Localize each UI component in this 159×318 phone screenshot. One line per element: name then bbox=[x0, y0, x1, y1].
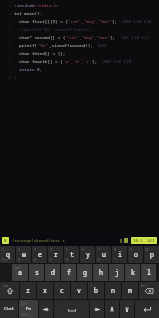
button[interactable]: Tab bbox=[12, 264, 28, 281]
staticText: / bbox=[107, 293, 110, 298]
staticText: = bbox=[95, 265, 98, 270]
staticText: 7 bbox=[98, 247, 101, 252]
staticText: v bbox=[77, 286, 81, 295]
staticText: j bbox=[115, 268, 119, 277]
button[interactable]: > bbox=[71, 282, 87, 299]
button[interactable]: = bbox=[93, 264, 108, 281]
button[interactable]: ? bbox=[88, 282, 104, 299]
button[interactable]: 5 bbox=[64, 246, 79, 263]
button[interactable]: < bbox=[54, 282, 70, 299]
staticText: 6 bbox=[9, 43, 12, 48]
button[interactable]: x bbox=[37, 282, 53, 299]
staticText: & bbox=[98, 257, 101, 262]
staticText: 4 bbox=[50, 247, 53, 252]
staticText: <stdio.h> bbox=[36, 2, 60, 8]
button[interactable]: Alt bbox=[19, 300, 38, 318]
staticText: ^ bbox=[82, 257, 85, 262]
button[interactable]: 10:1 All bbox=[133, 238, 155, 243]
staticText: s bbox=[35, 268, 39, 277]
button[interactable]: | bbox=[20, 282, 36, 299]
button[interactable]: 0 bbox=[144, 246, 159, 263]
button[interactable]: Left bbox=[39, 300, 53, 318]
button[interactable]: 9 bbox=[128, 246, 143, 263]
staticText: "cat","dog","bat" bbox=[66, 34, 110, 40]
staticText: Del bbox=[141, 283, 148, 288]
staticText: + bbox=[95, 275, 98, 280]
button[interactable]: Ctrl bbox=[0, 300, 18, 318]
staticText: 040 bbox=[98, 42, 106, 48]
staticText: d bbox=[51, 268, 55, 277]
staticText: l bbox=[147, 268, 151, 277]
staticText: /storage/shared/test.c bbox=[12, 238, 65, 243]
staticText: _ bbox=[79, 275, 82, 280]
staticText: w bbox=[22, 250, 26, 259]
staticText: Tab bbox=[14, 265, 21, 270]
button[interactable]: 3 bbox=[32, 246, 47, 263]
staticText: a bbox=[18, 268, 22, 277]
staticText: 2 bbox=[18, 247, 21, 252]
staticText: 8 bbox=[114, 247, 117, 252]
staticText: 3 bbox=[34, 247, 37, 252]
staticText: > bbox=[73, 283, 76, 288]
staticText: 1 bbox=[9, 3, 12, 8]
staticText: Fn bbox=[26, 306, 32, 312]
staticText: 0 bbox=[146, 247, 149, 252]
staticText: N bbox=[4, 238, 7, 243]
staticText: n bbox=[111, 286, 115, 295]
button[interactable]: Right bbox=[90, 300, 104, 318]
button[interactable]: 4 bbox=[48, 246, 63, 263]
button[interactable]: Down bbox=[120, 300, 134, 318]
staticText: 9 bbox=[130, 247, 133, 252]
staticText: }; bbox=[112, 18, 123, 24]
staticText: \ bbox=[143, 275, 146, 280]
button[interactable]: / bbox=[105, 282, 121, 299]
staticText: k bbox=[131, 268, 135, 277]
button[interactable]: Enter bbox=[135, 300, 159, 318]
staticText: char first[][3] = { bbox=[19, 18, 68, 24]
staticText: c bbox=[60, 286, 64, 295]
staticText: return 0; bbox=[19, 66, 43, 72]
staticText: @ bbox=[18, 257, 21, 262]
button[interactable]: Backspace bbox=[139, 282, 159, 299]
button[interactable]: 6 bbox=[80, 246, 95, 263]
button[interactable]: Up bbox=[105, 300, 119, 318]
staticText: "%s" bbox=[38, 42, 49, 48]
staticText: y bbox=[86, 250, 90, 259]
staticText: | bbox=[22, 293, 25, 298]
button[interactable]: 2 bbox=[16, 246, 31, 263]
staticText: ) bbox=[146, 257, 149, 262]
staticText: u bbox=[102, 250, 106, 259]
staticText: }; bbox=[92, 58, 103, 64]
staticText: g bbox=[83, 268, 87, 277]
staticText: 000 110 120 bbox=[123, 18, 152, 24]
staticText: { bbox=[111, 275, 114, 280]
button[interactable]: 1 bbox=[0, 246, 15, 263]
staticText: Esc bbox=[2, 257, 9, 262]
button[interactable]: s bbox=[29, 264, 44, 281]
button[interactable]: [ bbox=[125, 264, 140, 281]
button[interactable]: f bbox=[61, 264, 76, 281]
staticText: 7 bbox=[9, 51, 12, 56]
button[interactable]: N bbox=[4, 238, 7, 243]
button[interactable]: ] bbox=[141, 264, 156, 281]
button[interactable]: { bbox=[109, 264, 124, 281]
staticText: //printf("%s",sizeof(first)); bbox=[19, 26, 94, 32]
staticText: }; bbox=[110, 34, 121, 40]
button[interactable]: 7 bbox=[96, 246, 111, 263]
button[interactable]: 8 bbox=[112, 246, 127, 263]
button[interactable]: d bbox=[45, 264, 60, 281]
button[interactable]: : bbox=[122, 282, 138, 299]
staticText: h bbox=[99, 268, 103, 277]
staticText: i bbox=[118, 250, 122, 259]
staticText: ( bbox=[130, 257, 133, 262]
staticText: Cap bbox=[2, 283, 9, 288]
button[interactable]: Shift bbox=[0, 282, 19, 299]
staticText: 123+ bbox=[21, 312, 30, 317]
staticText: p bbox=[150, 250, 154, 259]
staticText: 6 bbox=[82, 247, 85, 252]
button[interactable]: - bbox=[77, 264, 92, 281]
staticText: 4 bbox=[9, 27, 12, 32]
button[interactable]: Space bbox=[54, 300, 89, 318]
